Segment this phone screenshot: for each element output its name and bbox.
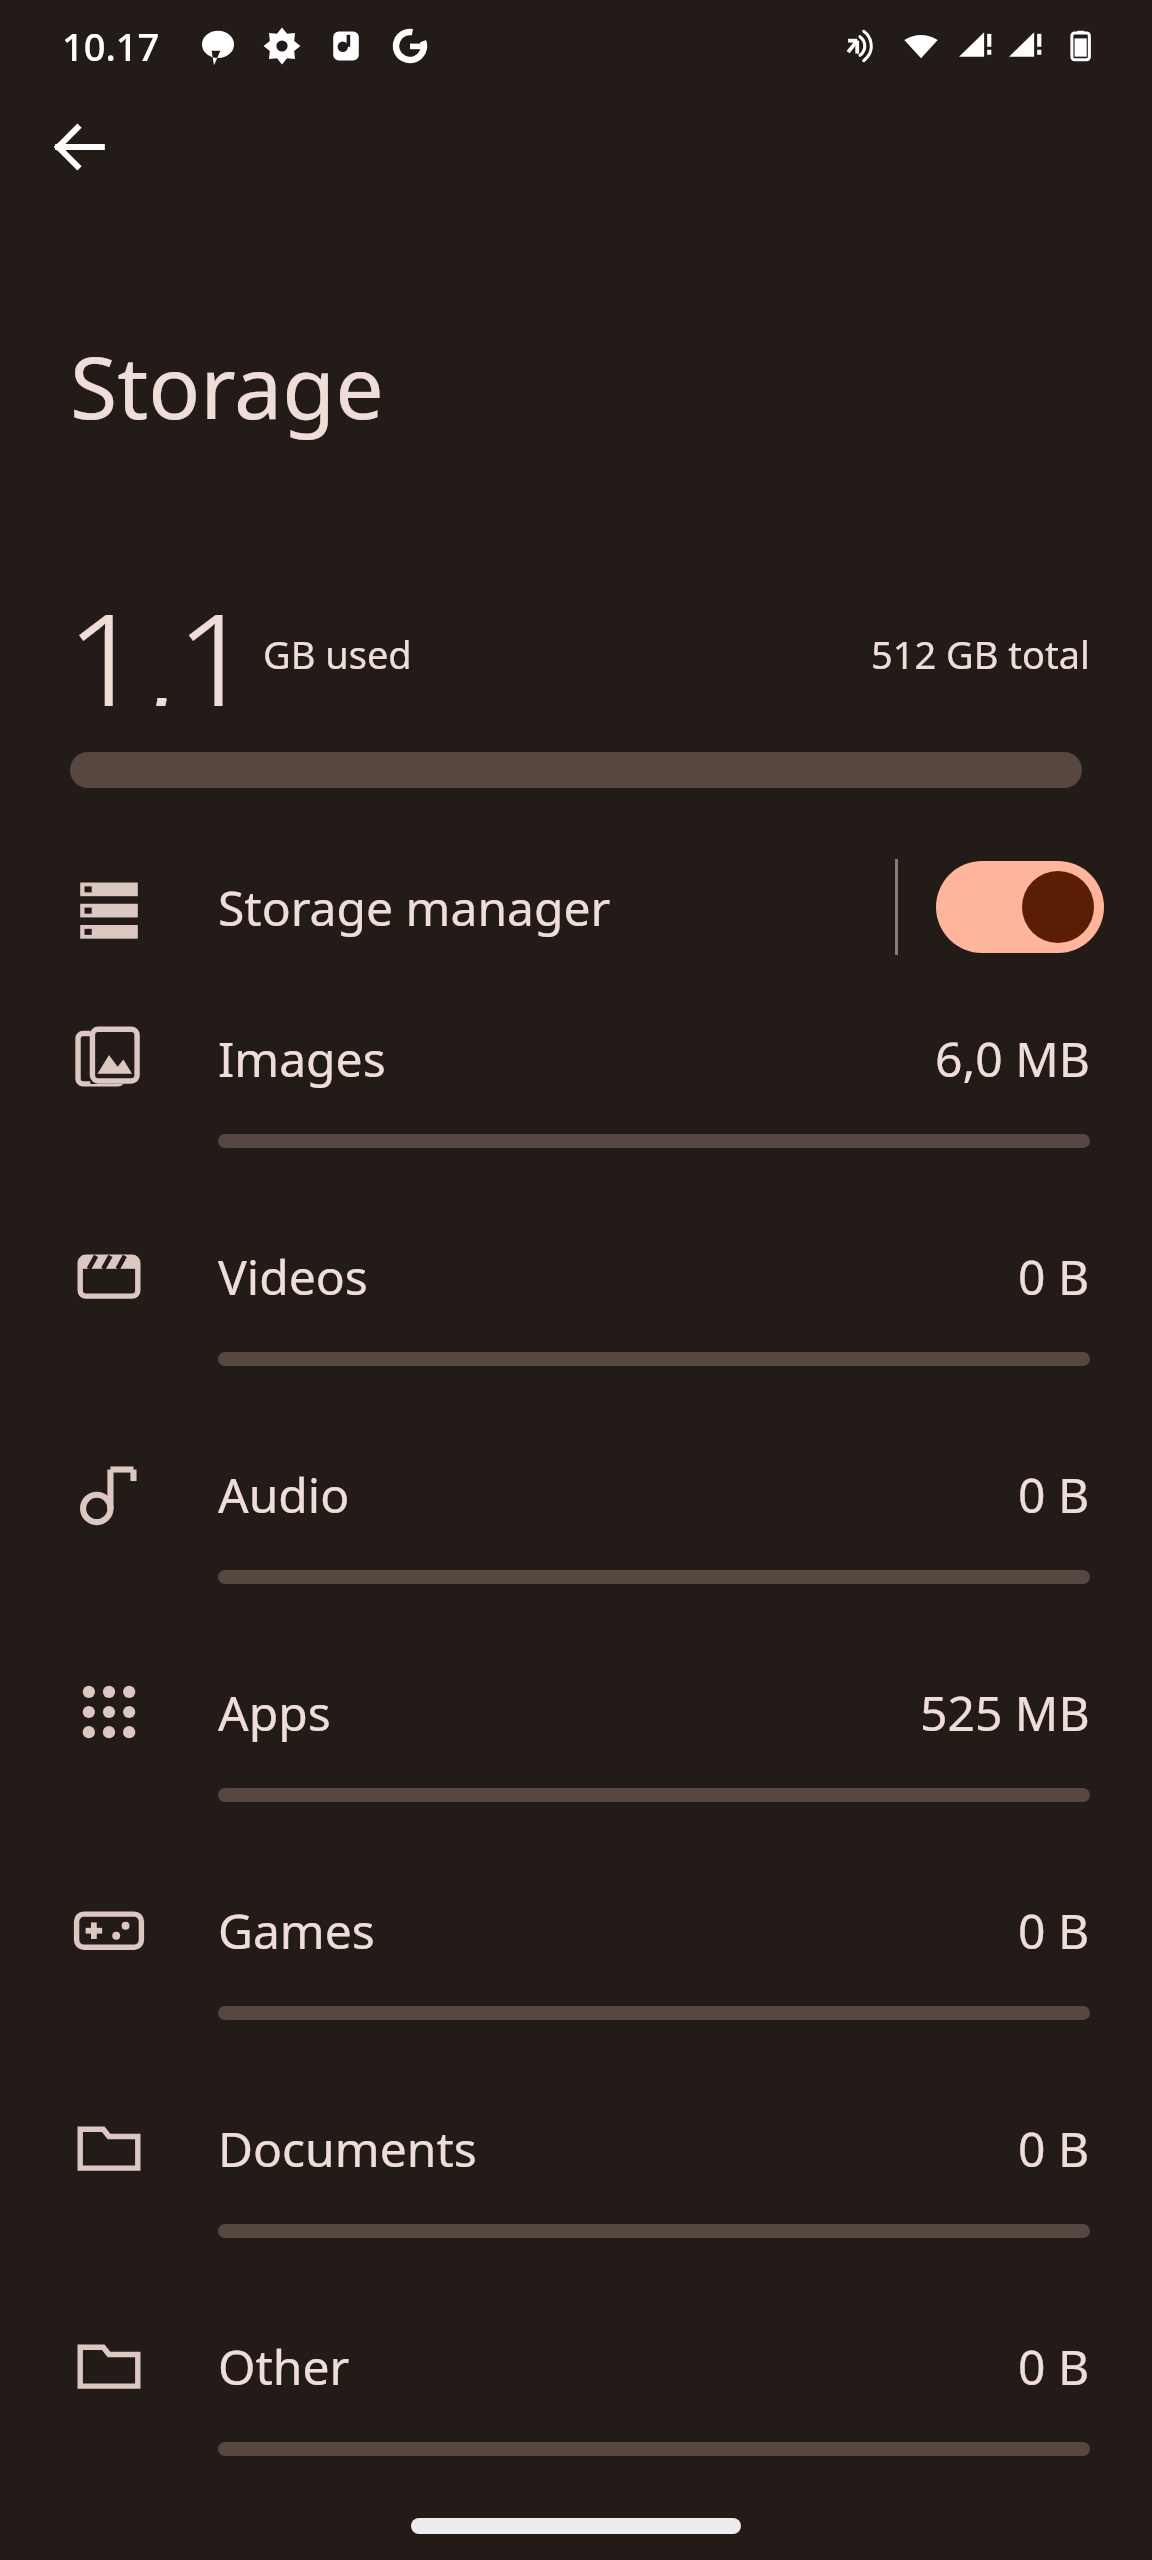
staticText: Documents: [218, 2116, 477, 2181]
button[interactable]: Images: [0, 982, 1152, 1200]
staticText: Other: [218, 2334, 350, 2399]
staticText: Apps: [218, 1680, 331, 1745]
button[interactable]: Documents: [0, 2072, 1152, 2290]
button[interactable]: Audio: [0, 1418, 1152, 1636]
staticText: 512 GB total: [871, 628, 1090, 680]
staticText: GB used: [263, 628, 412, 680]
button[interactable]: Storage manager toggle: [936, 861, 1104, 953]
staticText: Storage manager: [218, 875, 611, 940]
button[interactable]: Games: [0, 1854, 1152, 2072]
staticText: 525 MB: [920, 1680, 1090, 1745]
staticText: Games: [218, 1898, 375, 1963]
staticText: 0 B: [1018, 1244, 1090, 1309]
staticText: 1,1: [66, 566, 255, 706]
button[interactable]: Apps: [0, 1636, 1152, 1854]
staticText: Audio: [218, 1462, 350, 1527]
staticText: 0 B: [1018, 2116, 1090, 2181]
button[interactable]: Videos: [0, 1200, 1152, 1418]
staticText: 10.17: [62, 20, 160, 72]
staticText: Images: [218, 1026, 386, 1091]
staticText: 0 B: [1018, 1462, 1090, 1527]
staticText: Videos: [218, 1244, 368, 1309]
staticText: Storage: [70, 327, 384, 444]
button[interactable]: Other: [0, 2290, 1152, 2508]
staticText: 0 B: [1018, 1898, 1090, 1963]
button[interactable]: Storage manager: [0, 832, 1152, 982]
staticText: 6,0 MB: [935, 1026, 1090, 1091]
staticText: 0 B: [1018, 2334, 1090, 2399]
button[interactable]: Back: [38, 105, 122, 189]
